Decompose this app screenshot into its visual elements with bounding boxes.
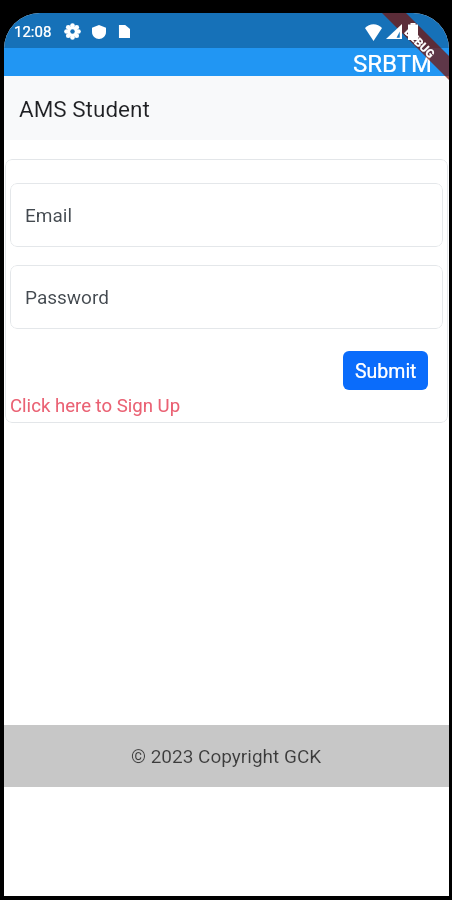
button[interactable]: Click here to Sign Up — [5, 395, 181, 417]
staticText: 12:08 — [14, 23, 52, 41]
staticText: Email — [25, 204, 73, 226]
staticText: SRBTM — [353, 50, 432, 78]
staticText: DEBUG — [402, 25, 438, 60]
button[interactable]: Email — [10, 183, 443, 247]
button[interactable]: Password — [10, 265, 443, 329]
staticText: Click here to Sign Up — [10, 395, 181, 417]
staticText: AMS Student — [19, 96, 150, 122]
staticText: Password — [25, 286, 109, 308]
staticText: Submit — [355, 360, 417, 383]
staticText: © 2023 Copyright GCK — [131, 745, 322, 767]
button[interactable]: Submit — [343, 351, 428, 390]
